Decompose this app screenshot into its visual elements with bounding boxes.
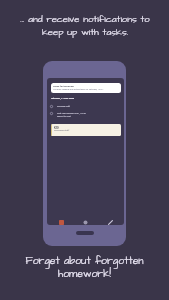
staticText: Saturday, 14 May 2022 xyxy=(51,97,75,100)
staticText: Report to resit xyxy=(57,115,71,118)
button[interactable]: Schedule xyxy=(79,216,91,225)
staticText: First year Biology SS51, 10:45 xyxy=(57,112,86,115)
button[interactable]: KSE xyxy=(51,124,121,136)
button[interactable]: Morning shift xyxy=(50,105,120,108)
staticText: Teaching staff xyxy=(54,129,70,132)
staticText: Tasks for tomorrow xyxy=(53,85,74,88)
button[interactable]: First year Biology SS51, 10:45 xyxy=(50,112,120,118)
button[interactable]: Tasks xyxy=(55,216,67,225)
staticText: Morning shift xyxy=(57,105,70,108)
staticText: KSE xyxy=(54,126,60,129)
button[interactable]: Compose xyxy=(104,216,116,225)
staticText: Forget about forgotten homework! xyxy=(25,254,144,281)
button[interactable]: Tasks for tomorrow xyxy=(51,83,121,93)
staticText: You have reading and writing tasks on Sa… xyxy=(53,88,105,90)
staticText: ... and receive notifications to keep up… xyxy=(20,13,150,39)
